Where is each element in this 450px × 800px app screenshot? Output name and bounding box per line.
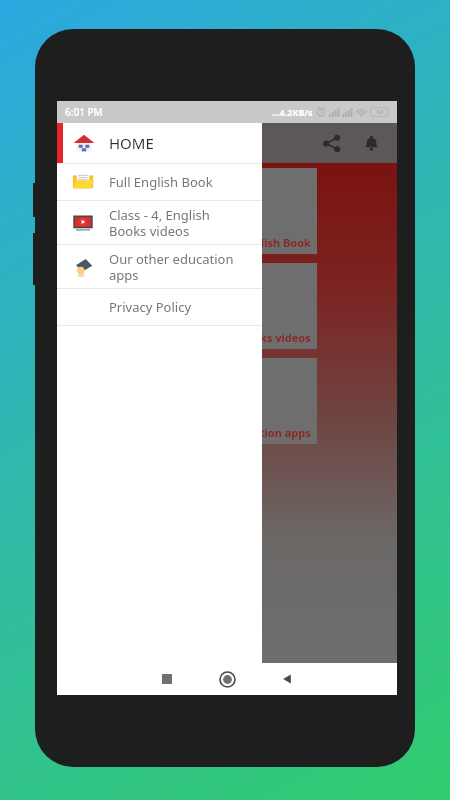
staticText: 42	[376, 108, 383, 116]
button[interactable]: Full English Book	[57, 164, 262, 200]
button[interactable]: Back	[257, 663, 317, 695]
staticText: Class - 4, English Books videos	[109, 206, 210, 239]
staticText: Privacy Policy	[109, 298, 192, 316]
button[interactable]: Class-4 English Books videos	[87, 263, 317, 349]
button[interactable]: Privacy Policy	[57, 289, 262, 325]
button[interactable]: Recent apps	[137, 663, 197, 695]
button[interactable]: Our other education apps	[57, 245, 262, 288]
staticText: Our other education apps	[170, 425, 311, 440]
button[interactable]: Full English Book	[87, 168, 317, 254]
button[interactable]: Notifications	[351, 123, 391, 163]
button[interactable]: Share	[311, 123, 351, 163]
staticText: Our other education apps	[109, 250, 234, 283]
staticText: ...4.2KB/s	[272, 106, 313, 118]
staticText: Full English Book	[218, 235, 311, 250]
button[interactable]: HOME	[57, 123, 262, 163]
button[interactable]: Class - 4, English Books videos	[57, 201, 262, 244]
button[interactable]: Our other education apps	[87, 358, 317, 444]
button[interactable]: Home	[197, 663, 257, 695]
staticText: HOME	[109, 133, 154, 153]
staticText: Class-4 English Books videos	[156, 330, 311, 345]
staticText: 6:01 PM	[65, 105, 103, 119]
staticText: Full English Book	[109, 173, 213, 191]
